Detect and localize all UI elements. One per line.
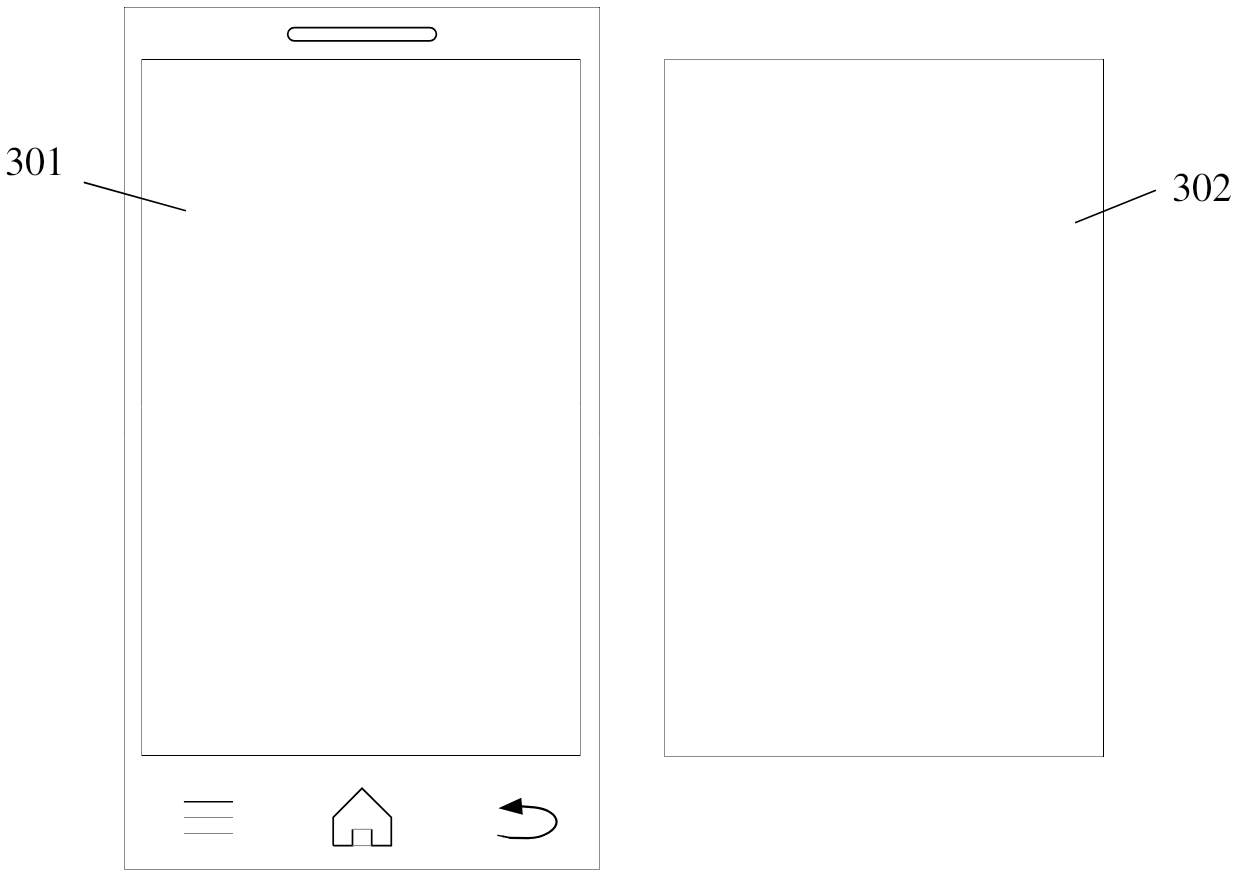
button[interactable]: Home — [325, 782, 399, 854]
button[interactable]: Menu — [174, 790, 244, 842]
staticText: 302 — [1172, 169, 1232, 209]
button[interactable]: Back — [492, 790, 566, 844]
staticText: 301 — [5, 143, 65, 183]
